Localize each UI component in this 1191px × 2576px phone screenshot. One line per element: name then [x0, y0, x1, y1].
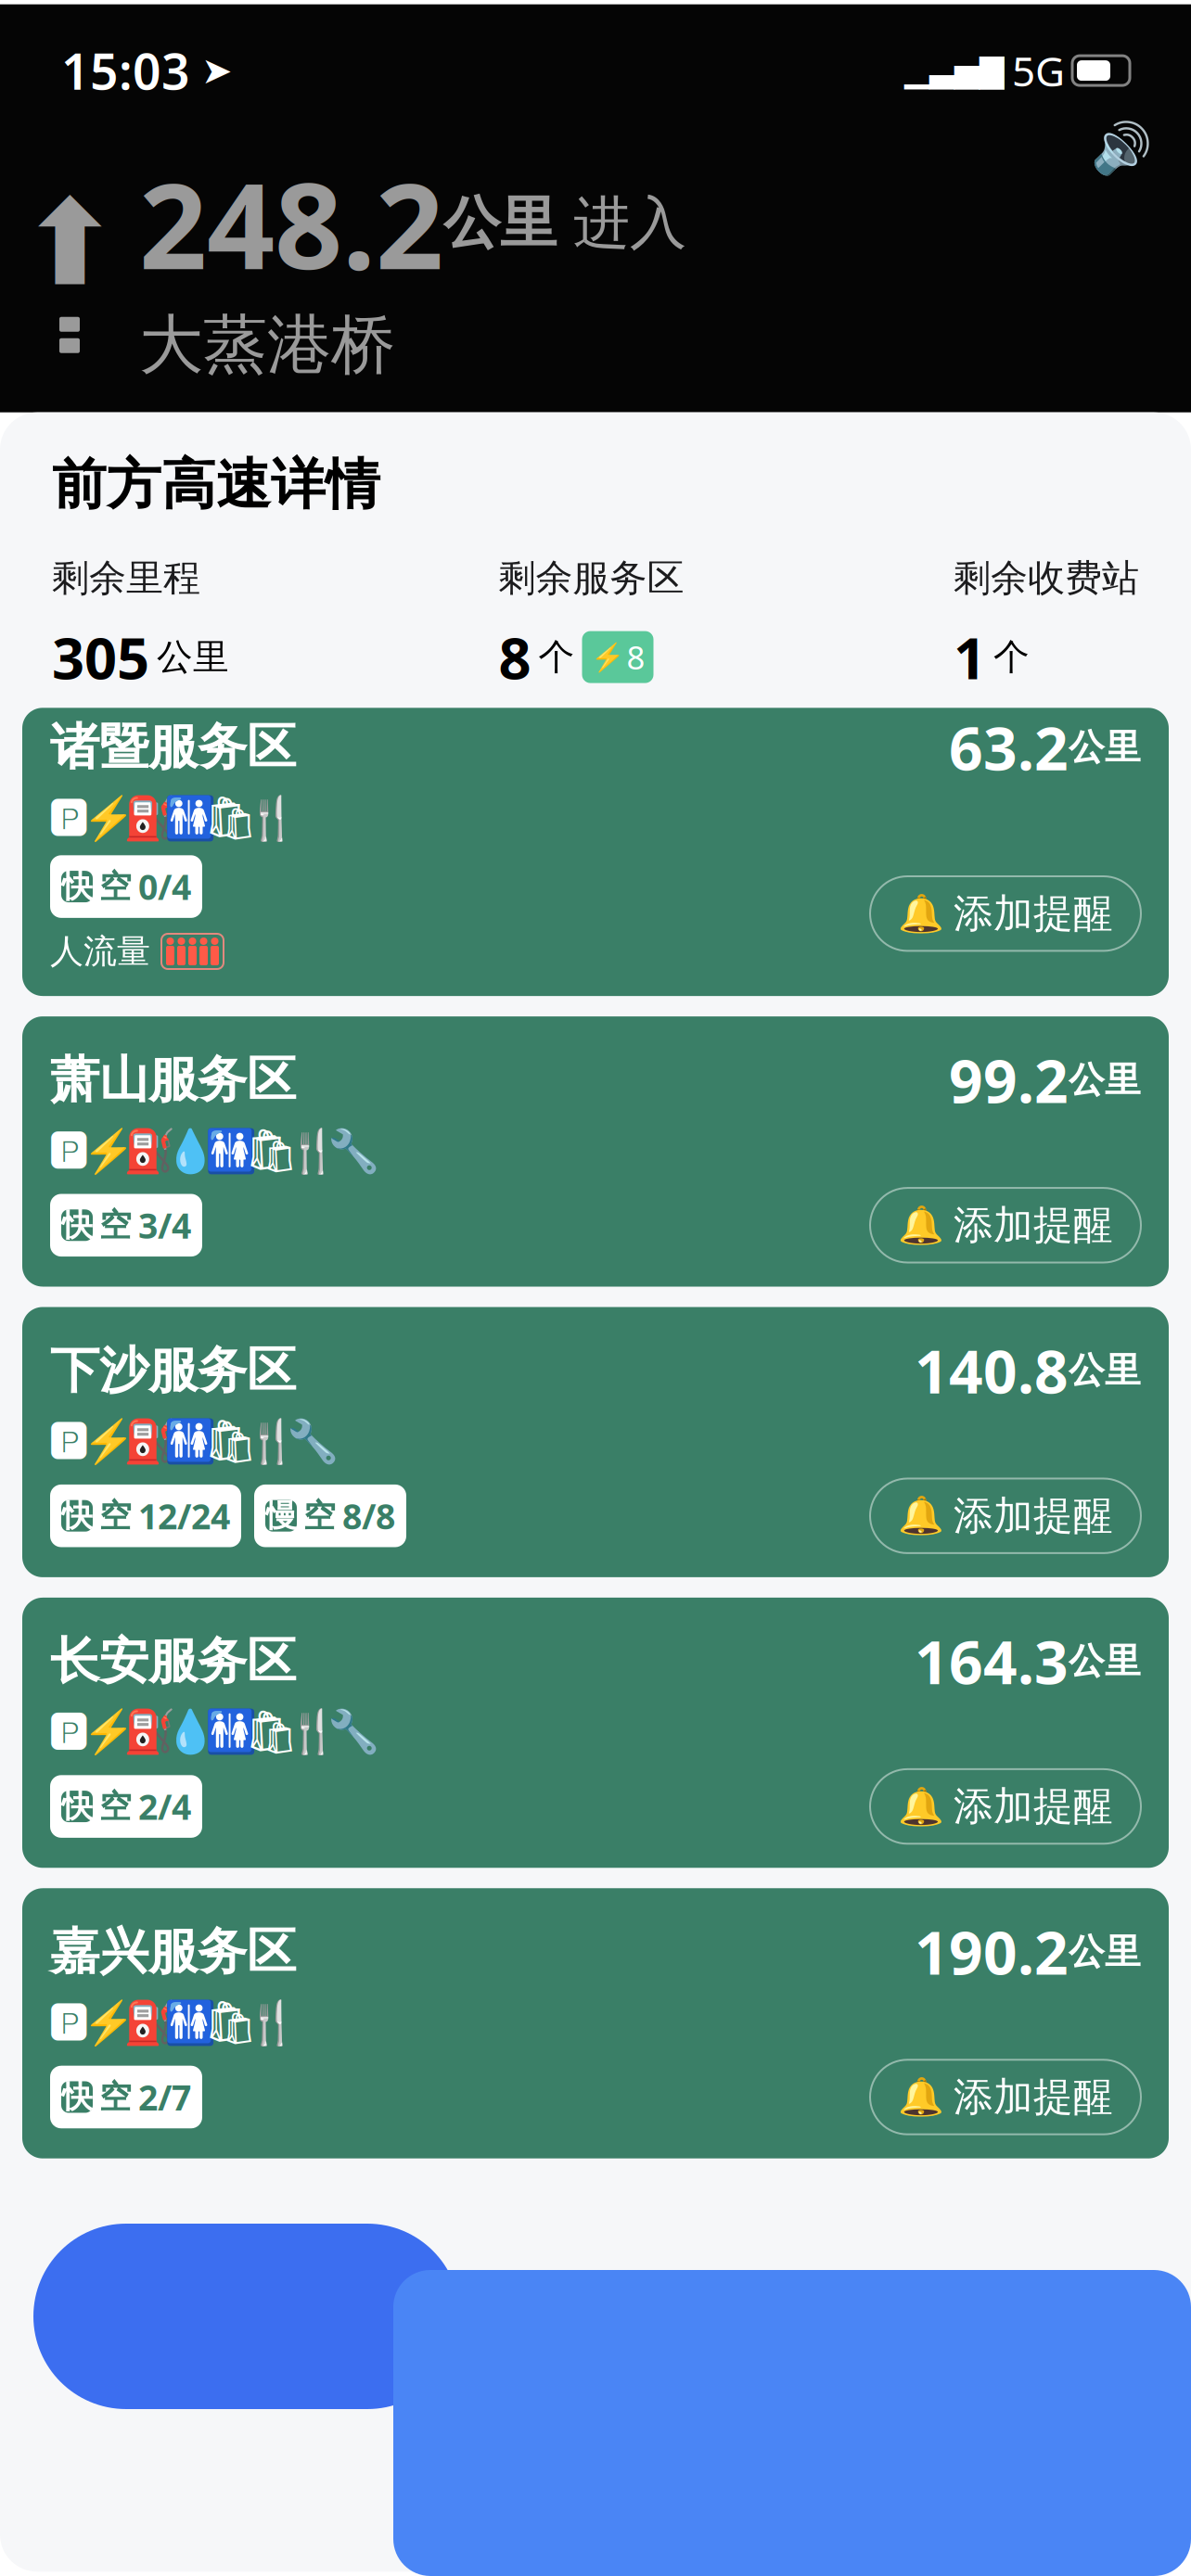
staticText: 🚻 [164, 794, 216, 842]
staticText: 🍴 [246, 794, 298, 842]
staticText: ⛽ [123, 1127, 175, 1175]
staticText: 公里 [443, 188, 557, 258]
staticText: 萧山服务区 [50, 1050, 296, 1110]
staticText: 🍴 [287, 1127, 339, 1175]
staticText: 添加提醒 [954, 889, 1113, 938]
staticText: 8/8 [342, 1493, 395, 1539]
staticText: 248.2 [139, 144, 443, 302]
staticText: 🔔 [898, 892, 944, 935]
staticText: 剩余收费站 [954, 555, 1139, 601]
staticText: 剩余里程 [52, 555, 200, 601]
staticText: 🛍 [204, 794, 258, 842]
staticText: ⚡ [590, 641, 625, 673]
staticText: ⚡ [83, 1127, 134, 1175]
staticText: 快 [62, 1497, 92, 1535]
button[interactable]: 诸暨服务区 [22, 708, 1169, 996]
staticText: ⛽ [123, 1417, 175, 1465]
staticText: 诸暨服务区 [50, 717, 296, 778]
staticText: 添加提醒 [954, 1201, 1113, 1250]
staticText: 快 [62, 1787, 92, 1825]
staticText: 🔔 [898, 1785, 944, 1828]
staticText: 添加提醒 [954, 1782, 1113, 1831]
button[interactable]: 🔔 [870, 1479, 1141, 1553]
staticText: 15:03 [61, 38, 190, 103]
staticText: 🛍 [245, 1708, 299, 1756]
staticText: 空 [99, 867, 132, 906]
staticText: 5G [1012, 43, 1065, 98]
staticText: 空 [303, 1496, 336, 1536]
staticText: ⛽ [123, 1708, 175, 1756]
staticText: 🚻 [205, 1708, 257, 1756]
button[interactable]: 🔔 [870, 2060, 1141, 2134]
staticText: 2/7 [138, 2074, 191, 2120]
staticText: 🛍 [204, 1417, 258, 1465]
staticText: 快 [62, 1206, 92, 1244]
staticText: 下沙服务区 [50, 1340, 296, 1401]
staticText: 63.2 [949, 708, 1069, 787]
staticText: 99.2 [949, 1041, 1069, 1119]
staticText: ⚡ [83, 1708, 134, 1756]
staticText: 190.2 [915, 1912, 1069, 1991]
staticText: 🔧 [327, 1127, 379, 1175]
staticText: 公里 [1069, 725, 1141, 769]
staticText: 空 [99, 1205, 132, 1245]
staticText: 长安服务区 [50, 1631, 296, 1691]
staticText: 快 [62, 868, 92, 905]
staticText: ⚡ [83, 794, 134, 842]
staticText: 🅿︎ [48, 1421, 87, 1462]
staticText: 公里 [1069, 1639, 1141, 1683]
staticText: 剩余服务区 [499, 555, 684, 601]
staticText: 🔔 [898, 2076, 944, 2118]
staticText: 添加提醒 [954, 1492, 1113, 1540]
staticText: 前方高速详情 [52, 451, 380, 518]
staticText: 💧 [164, 1708, 216, 1756]
staticText: 🍴 [246, 1417, 298, 1465]
button[interactable]: 🔔 [870, 876, 1141, 951]
staticText: 人流量 [50, 931, 150, 972]
staticText: 🍴 [287, 1708, 339, 1756]
staticText: ⬆ [20, 176, 119, 310]
staticText: 嘉兴服务区 [50, 1921, 296, 1982]
staticText: 个 [993, 635, 1030, 679]
staticText: 大蒸港桥 [139, 306, 395, 385]
staticText: 🔧 [327, 1708, 379, 1756]
button[interactable]: 长安服务区 [22, 1598, 1169, 1868]
staticText: 🛍 [245, 1127, 299, 1175]
staticText: 140.8 [915, 1331, 1069, 1410]
button[interactable]: 🔔 [870, 1188, 1141, 1262]
staticText: ⚡ [83, 1999, 134, 2047]
staticText: 公里 [157, 635, 229, 679]
staticText: 空 [99, 1496, 132, 1536]
staticText: 🛍 [204, 1999, 258, 2047]
staticText: ⛽ [123, 1999, 175, 2047]
staticText: 🚻 [164, 1999, 216, 2047]
button[interactable]: 下沙服务区 [22, 1307, 1169, 1577]
staticText: ⛽ [123, 794, 175, 842]
staticText: ▁▃▅▇ [904, 52, 1005, 89]
button[interactable]: 萧山服务区 [22, 1016, 1169, 1287]
button[interactable]: 🔔 [870, 1769, 1141, 1844]
staticText: 公里 [1069, 1930, 1141, 1974]
staticText: 🔊 [1091, 120, 1152, 176]
button[interactable]: Mute voice guidance [1089, 116, 1154, 181]
staticText: 🅿︎ [48, 1130, 87, 1171]
staticText: 305 [52, 619, 149, 695]
staticText: 🚻 [205, 1127, 257, 1175]
staticText: 🔧 [287, 1417, 339, 1465]
staticText: 🚻 [164, 1417, 216, 1465]
staticText: 🅿︎ [48, 2002, 87, 2043]
staticText: 慢 [266, 1497, 296, 1535]
staticText: 💧 [164, 1127, 216, 1175]
staticText: 3/4 [138, 1202, 191, 1248]
staticText: 个 [538, 635, 575, 679]
staticText: 快 [62, 2078, 92, 2116]
staticText: 164.3 [915, 1622, 1069, 1701]
staticText: 公里 [1069, 1348, 1141, 1393]
staticText: 2/4 [138, 1783, 191, 1829]
staticText: 公里 [1069, 1058, 1141, 1102]
staticText: 8 [627, 636, 645, 678]
staticText: 添加提醒 [954, 2073, 1113, 2121]
staticText: 🔔 [898, 1495, 944, 1537]
button[interactable]: 嘉兴服务区 [22, 1888, 1169, 2158]
staticText: 0/4 [138, 864, 191, 910]
